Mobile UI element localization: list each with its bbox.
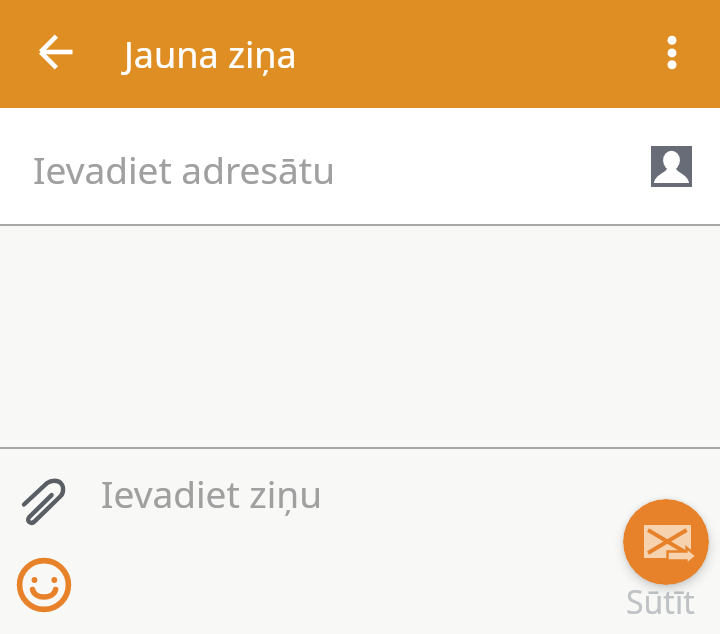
button[interactable]: Ievadiet ziņu (94, 463, 614, 543)
staticText: Jauna ziņa (124, 30, 297, 79)
button[interactable]: Insert emoji (16, 557, 72, 613)
button[interactable]: Send message (623, 499, 709, 585)
staticText: Ievadiet ziņu (101, 468, 323, 518)
button[interactable]: Choose contact (651, 146, 692, 187)
button[interactable]: Attach file (20, 479, 72, 533)
staticText: Sūtīt (626, 580, 695, 624)
button[interactable]: Ievadiet adresātu (0, 108, 720, 225)
button[interactable]: More options (654, 30, 690, 78)
staticText: Ievadiet adresātu (33, 144, 335, 194)
button[interactable]: Back (32, 28, 80, 76)
